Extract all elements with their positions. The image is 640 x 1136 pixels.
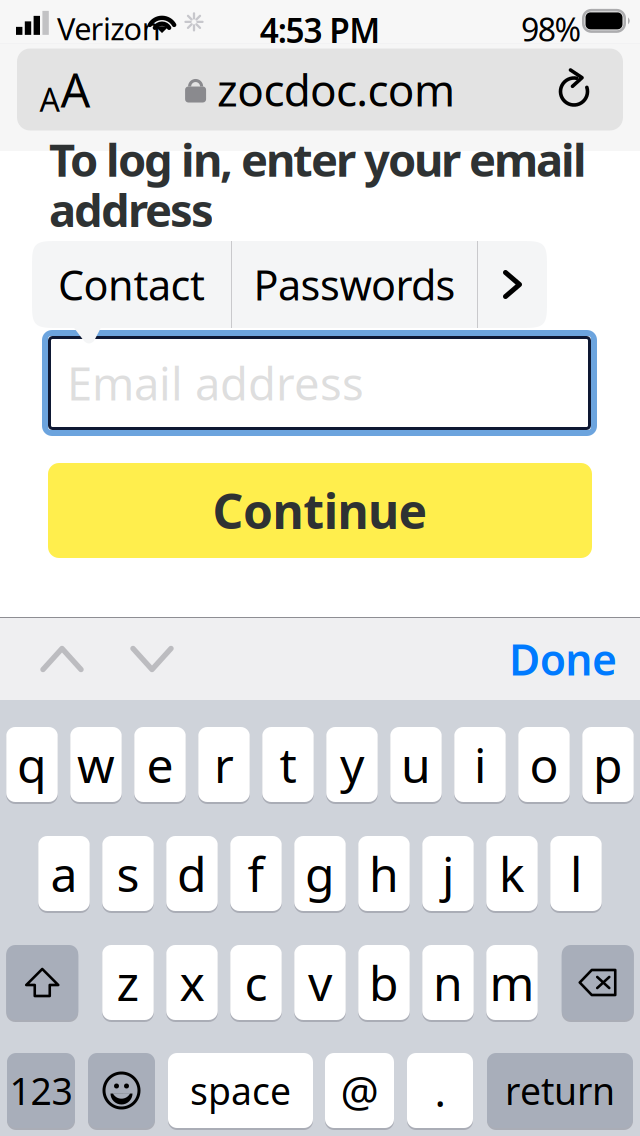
staticText: d — [177, 842, 207, 905]
staticText: Contact — [58, 257, 205, 312]
staticText: i — [474, 733, 486, 796]
button[interactable]: o — [518, 726, 570, 803]
staticText: . — [434, 1062, 445, 1119]
button[interactable]: l — [550, 835, 602, 912]
button[interactable]: . — [407, 1052, 473, 1129]
staticText: o — [529, 733, 558, 796]
button[interactable]: k — [486, 835, 538, 912]
staticText: p — [593, 733, 623, 796]
button[interactable]: Reload page — [527, 48, 623, 130]
staticText: z — [116, 951, 139, 1014]
button[interactable]: Passwords — [232, 241, 477, 328]
button[interactable]: @ — [325, 1052, 394, 1129]
staticText: b — [369, 951, 399, 1014]
button[interactable] — [88, 1052, 155, 1129]
button[interactable]: Done — [502, 618, 624, 700]
staticText: e — [146, 733, 173, 796]
button[interactable]: v — [294, 944, 346, 1021]
button[interactable]: r — [198, 726, 250, 803]
staticText: v — [308, 951, 332, 1014]
staticText: n — [433, 951, 463, 1014]
staticText: Done — [509, 631, 617, 687]
staticText: w — [77, 733, 115, 796]
button[interactable]: return — [487, 1052, 633, 1129]
button[interactable]: j — [422, 835, 474, 912]
staticText: f — [247, 842, 264, 905]
staticText: To log in, enter your email — [49, 129, 587, 189]
staticText: space — [190, 1066, 291, 1115]
staticText: Verizon — [57, 8, 161, 49]
button[interactable]: i — [454, 726, 506, 803]
button[interactable]: Contact — [32, 241, 231, 328]
staticText: g — [305, 842, 335, 905]
button[interactable]: s — [102, 835, 154, 912]
button[interactable]: m — [486, 944, 538, 1021]
button[interactable]: g — [294, 835, 346, 912]
button[interactable]: space — [168, 1052, 313, 1129]
staticText: r — [214, 733, 234, 796]
staticText: c — [244, 951, 267, 1014]
button[interactable]: p — [582, 726, 634, 803]
button[interactable]: h — [358, 835, 410, 912]
staticText: y — [340, 733, 364, 796]
staticText: x — [179, 951, 204, 1014]
staticText: @ — [340, 1062, 378, 1119]
button[interactable]: d — [166, 835, 218, 912]
button[interactable]: e — [134, 726, 186, 803]
staticText: Passwords — [253, 257, 455, 312]
button[interactable]: n — [422, 944, 474, 1021]
staticText: t — [279, 733, 296, 796]
staticText: zocdoc.com — [217, 60, 455, 119]
button[interactable]: u — [390, 726, 442, 803]
button[interactable]: Previous field — [17, 618, 107, 700]
staticText: Email address — [67, 353, 364, 413]
button[interactable] — [6, 944, 78, 1021]
button[interactable] — [562, 944, 634, 1021]
staticText: 4:53 PM — [260, 8, 380, 52]
staticText: 123 — [9, 1066, 72, 1115]
staticText: return — [505, 1066, 615, 1115]
button[interactable]: zocdoc.com — [185, 48, 455, 130]
staticText: k — [499, 842, 525, 905]
staticText: m — [489, 951, 534, 1014]
button[interactable]: a — [38, 835, 90, 912]
staticText: s — [116, 842, 139, 905]
button[interactable]: Continue — [48, 463, 592, 558]
button[interactable]: x — [166, 944, 218, 1021]
button[interactable]: Next field — [107, 618, 197, 700]
staticText: q — [17, 733, 47, 796]
staticText: j — [442, 842, 454, 905]
button[interactable]: y — [326, 726, 378, 803]
button[interactable]: b — [358, 944, 410, 1021]
button[interactable]: Page settings — [17, 48, 113, 130]
staticText: u — [401, 733, 431, 796]
staticText: A — [60, 58, 90, 120]
button[interactable]: c — [230, 944, 282, 1021]
staticText: A — [39, 78, 59, 120]
staticText: address — [49, 179, 214, 239]
button[interactable]: f — [230, 835, 282, 912]
button[interactable]: More AutoFill options — [478, 241, 547, 328]
staticText: 98% — [521, 8, 582, 50]
staticText: Continue — [212, 479, 428, 542]
button[interactable]: t — [262, 726, 314, 803]
button[interactable]: w — [70, 726, 122, 803]
button[interactable]: z — [102, 944, 154, 1021]
button[interactable]: q — [6, 726, 58, 803]
button[interactable]: 123 — [7, 1052, 75, 1129]
staticText: h — [369, 842, 399, 905]
staticText: a — [50, 842, 77, 905]
staticText: l — [570, 842, 582, 905]
